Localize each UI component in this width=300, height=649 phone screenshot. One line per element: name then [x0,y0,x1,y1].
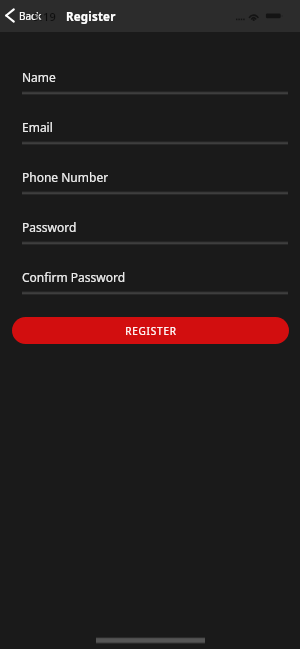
button[interactable]: Confirm Password [20,265,288,294]
button[interactable]: Password [20,215,288,244]
staticText: 9:19 [33,9,57,24]
staticText: Password [22,219,77,235]
button[interactable]: Phone Number [20,165,288,194]
button[interactable]: REGISTER [12,317,289,344]
other: Battery [265,13,284,20]
staticText: Email [22,119,53,135]
other: Wi-Fi [248,12,260,21]
staticText: Confirm Password [22,269,126,285]
other: Cellular signal [236,18,245,21]
staticText: Back [19,9,42,23]
staticText: Phone Number [22,169,109,185]
staticText: Name [22,69,56,85]
button[interactable]: Back [2,0,48,32]
staticText: Register [66,9,116,25]
button[interactable]: Name [20,65,288,94]
button[interactable]: Email [20,115,288,144]
staticText: REGISTER [125,324,177,338]
